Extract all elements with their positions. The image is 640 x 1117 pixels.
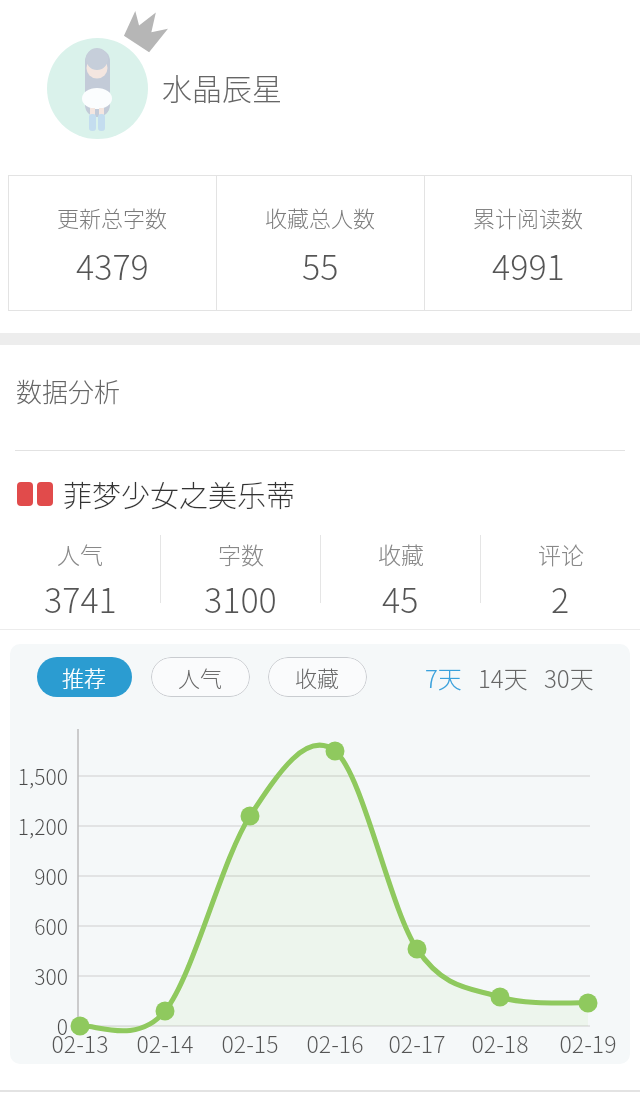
button[interactable]: 7天 [425,660,462,695]
staticText: 累计阅读数 [473,201,584,233]
button[interactable]: 更新总字数 [8,175,216,311]
staticText: 人气 [178,661,223,693]
button[interactable] [47,38,148,139]
staticText: 水晶辰星 [162,65,282,108]
staticText: 45 [382,574,419,619]
staticText: 推荐 [62,661,107,693]
staticText: 02-18 [465,1026,535,1059]
staticText: 收藏 [295,661,340,693]
staticText: 02-15 [215,1026,285,1059]
button[interactable]: 推荐 [37,657,132,697]
button[interactable]: 累计阅读数 [425,175,632,311]
staticText: 3100 [204,574,277,619]
staticText: 02-13 [45,1026,115,1059]
staticText: 数据分析 [16,372,121,410]
staticText: 4991 [492,241,565,290]
staticText: 2 [551,574,570,619]
staticText: 02-16 [300,1026,370,1059]
staticText: 菲梦少女之美乐蒂 [63,473,296,515]
staticText: 评论 [538,537,584,570]
staticText: 1,500 [14,761,68,791]
staticText: 300 [14,961,68,991]
staticText: 字数 [218,537,264,570]
button[interactable]: 收藏 [268,657,367,697]
staticText: 收藏总人数 [265,201,376,233]
staticText: 900 [14,861,68,891]
staticText: 02-14 [130,1026,200,1059]
button[interactable]: 14天 [478,660,528,695]
button[interactable]: 菲梦少女之美乐蒂 [17,473,296,515]
staticText: 600 [14,911,68,941]
button[interactable]: 字数 [161,519,320,619]
button[interactable]: 收藏 [321,519,480,619]
staticText: 人气 [57,537,103,570]
staticText: 0 [14,1011,68,1041]
button[interactable]: 人气 [151,657,250,697]
button[interactable]: 人气 [0,519,160,619]
staticText: 1,200 [14,811,68,841]
staticText: 更新总字数 [57,201,168,233]
staticText: 02-17 [382,1026,452,1059]
staticText: 3741 [44,574,117,619]
staticText: 02-19 [553,1026,623,1059]
button[interactable]: 收藏总人数 [217,175,424,311]
staticText: 收藏 [378,537,424,570]
button[interactable]: 评论 [481,519,640,619]
button[interactable]: 30天 [544,660,594,695]
staticText: 4379 [76,241,149,290]
staticText: 55 [302,241,339,290]
